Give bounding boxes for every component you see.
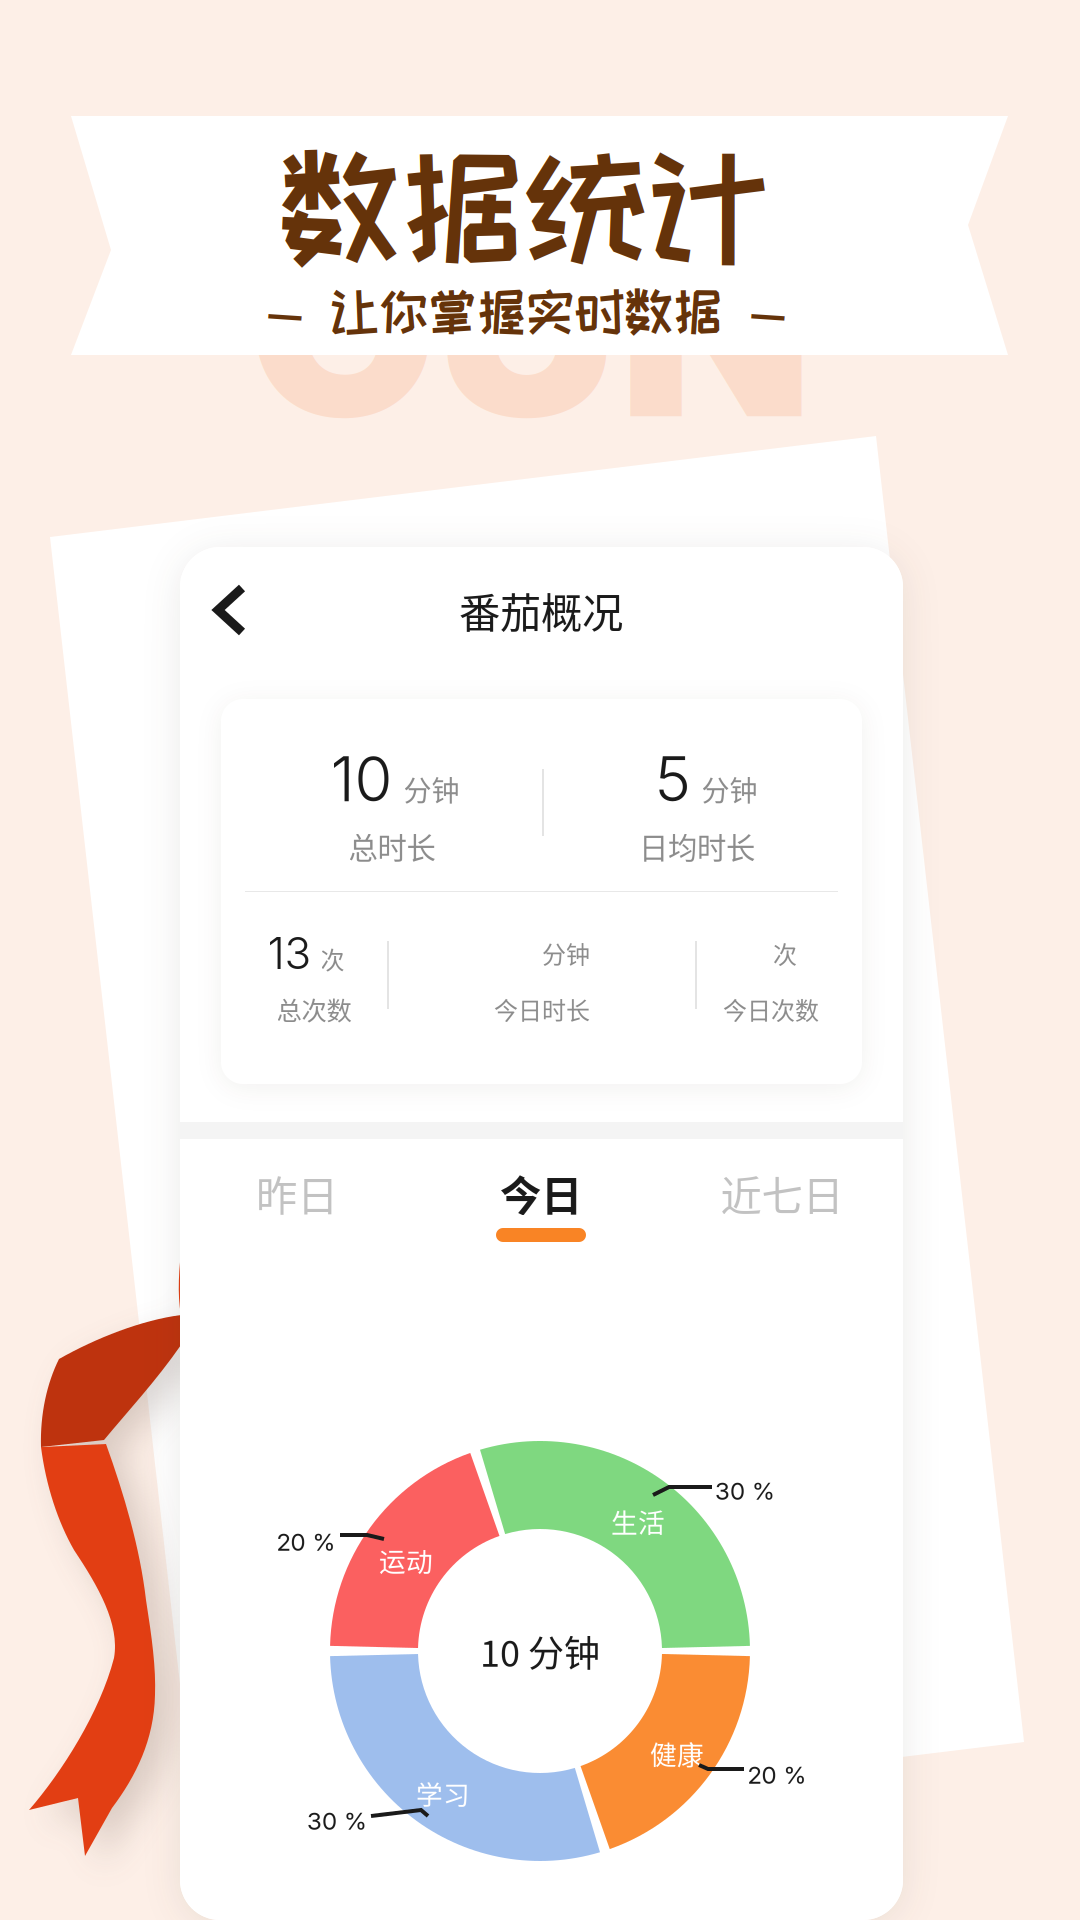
staticText: 健康 [650, 1734, 704, 1772]
staticText: 总时长 [348, 825, 435, 867]
staticText: 10 [330, 742, 392, 816]
staticText: 近七日 [720, 1163, 843, 1223]
button[interactable]: 昨日 [180, 547, 903, 1920]
staticText: 今日次数 [723, 992, 819, 1026]
staticText: 分钟 [403, 769, 459, 809]
staticText: 数据统计 [278, 139, 770, 273]
staticText: 13 [267, 926, 311, 980]
staticText: 分钟 [542, 936, 590, 970]
staticText: 20 % [276, 1527, 335, 1556]
staticText: 30 % [715, 1476, 775, 1505]
staticText: 分钟 [701, 769, 757, 809]
staticText: 昨日 [256, 1163, 338, 1223]
staticText: CUN [246, 171, 813, 477]
staticText: 10 分钟 [480, 1625, 600, 1677]
staticText: 次 [773, 936, 797, 970]
staticText: 总次数 [276, 991, 351, 1027]
button[interactable]: 今日 [180, 547, 903, 1920]
staticText: 运动 [379, 1541, 433, 1579]
staticText: — 让你掌握实时数据 — [265, 284, 787, 338]
staticText: 今日时长 [494, 992, 590, 1026]
staticText: 学习 [416, 1774, 470, 1812]
staticText: 番茄概况 [459, 580, 623, 640]
staticText: 5 [654, 742, 690, 816]
staticText: 生活 [611, 1502, 665, 1540]
staticText: 20 % [747, 1760, 806, 1789]
staticText: 今日 [500, 1163, 582, 1223]
button[interactable]: Back [192, 562, 268, 658]
staticText: 日均时长 [639, 825, 755, 867]
staticText: 次 [320, 941, 344, 976]
button[interactable]: 近七日 [180, 547, 903, 1920]
staticText: 30 % [307, 1806, 367, 1835]
